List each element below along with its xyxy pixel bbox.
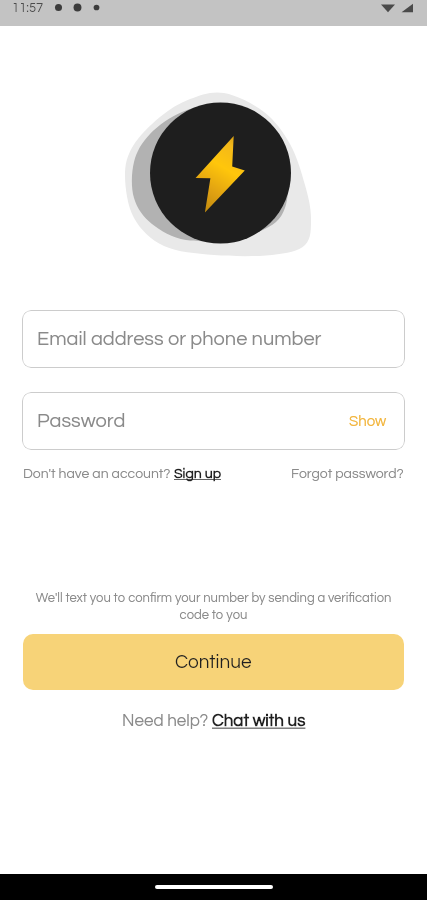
- button[interactable]: Don't have an account?: [23, 467, 221, 481]
- button[interactable]: Password: [22, 392, 405, 450]
- staticText: Email address or phone number: [37, 329, 322, 350]
- button[interactable]: Forgot password?: [291, 467, 404, 481]
- button[interactable]: Continue: [23, 634, 404, 690]
- button[interactable]: Chat with us: [212, 712, 306, 730]
- staticText: Need help?: [122, 712, 212, 730]
- staticText: Sign up: [174, 467, 221, 481]
- button[interactable]: Show: [349, 414, 387, 429]
- staticText: 11:57: [12, 1, 44, 14]
- staticText: Continue: [175, 652, 252, 672]
- staticText: We'll text you to confirm your number by…: [23, 591, 404, 621]
- staticText: Don't have an account?: [23, 467, 174, 481]
- button[interactable]: Email address or phone number: [22, 310, 405, 368]
- staticText: Password: [37, 411, 126, 432]
